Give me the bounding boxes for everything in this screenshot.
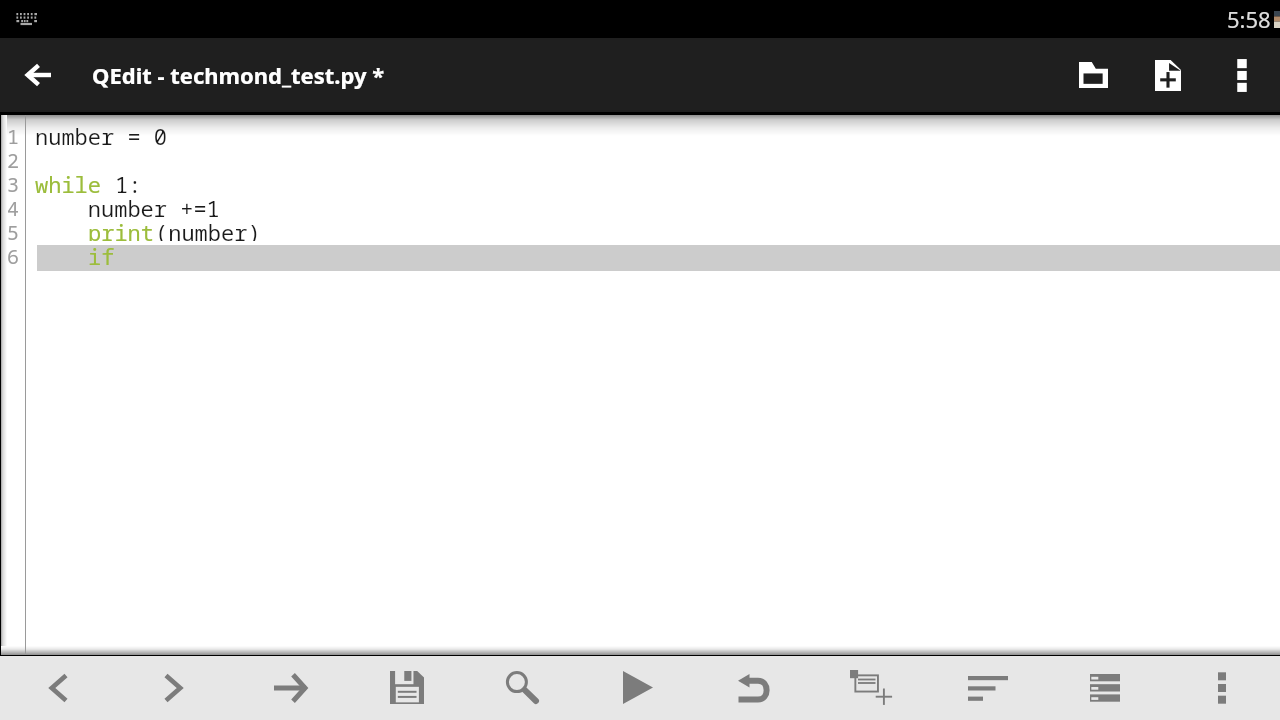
button[interactable]: Undo: [700, 656, 816, 720]
staticText: 5: [7, 219, 19, 243]
button[interactable]: Next: [117, 656, 234, 720]
staticText: 1:: [115, 169, 142, 193]
button[interactable]: Go to line: [234, 656, 351, 720]
button[interactable]: Run: [584, 656, 700, 720]
staticText: [35, 241, 88, 265]
button[interactable]: More options: [1204, 38, 1280, 112]
staticText: 5:58: [1227, 4, 1271, 34]
staticText: if: [88, 241, 115, 265]
button[interactable]: Search: [468, 656, 584, 720]
staticText: while: [35, 169, 115, 193]
staticText: number +=1: [35, 193, 220, 217]
button[interactable]: Previous: [0, 656, 117, 720]
button[interactable]: Save: [351, 656, 468, 720]
staticText: 6: [7, 243, 19, 267]
button[interactable]: Outline: [1048, 656, 1164, 720]
staticText: 4: [7, 195, 19, 219]
staticText: print: [88, 217, 155, 241]
button[interactable]: New tab: [816, 656, 932, 720]
staticText: number = 0: [35, 121, 168, 145]
button[interactable]: Format: [932, 656, 1048, 720]
staticText: 3: [7, 171, 19, 195]
staticText: (number): [155, 217, 261, 241]
staticText: 2: [7, 147, 19, 171]
button[interactable]: New file: [1128, 38, 1204, 112]
staticText: 1: [7, 123, 19, 147]
button[interactable]: Open folder: [1052, 38, 1128, 112]
button[interactable]: Back: [0, 38, 76, 112]
staticText: QEdit - techmond_test.py *: [92, 60, 385, 90]
button[interactable]: More: [1164, 656, 1280, 720]
